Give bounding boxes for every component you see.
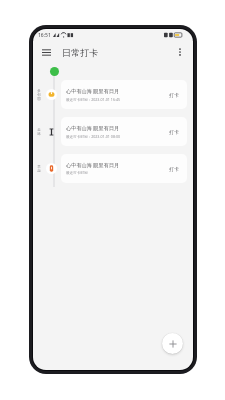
staticText: 16:51 xyxy=(38,32,51,39)
button[interactable]: 打卡 xyxy=(166,164,182,174)
button[interactable]: Open navigation menu xyxy=(39,45,53,59)
staticText: 打卡 xyxy=(169,166,179,172)
staticText: 国 xyxy=(37,97,41,101)
button[interactable]: 打卡 xyxy=(166,90,182,100)
staticText: 打卡 xyxy=(169,129,179,135)
button[interactable]: Add new check-in xyxy=(162,333,183,354)
staticText: 多 xyxy=(37,89,41,93)
staticText: 起 xyxy=(37,169,41,173)
staticText: 心中有山海 眼里有日月 xyxy=(66,124,120,131)
staticText: 心中有山海 眼里有日月 xyxy=(66,87,120,94)
button[interactable]: 心中有山海 眼里有日月 xyxy=(61,117,187,146)
button[interactable]: 心中有山海 眼里有日月 xyxy=(61,154,187,183)
button[interactable]: More options xyxy=(173,45,187,59)
staticText: 日常打卡 xyxy=(62,47,98,58)
staticText: 最近打卡时间 xyxy=(66,171,88,176)
staticText: 打卡 xyxy=(169,92,179,98)
staticText: 邻 xyxy=(37,93,41,97)
button[interactable]: 心中有山海 眼里有日月 xyxy=(61,80,187,109)
staticText: 最近打卡时间：2023-01-01 08:00 xyxy=(66,134,121,139)
staticText: 早 xyxy=(37,165,41,169)
staticText: 心中有山海 眼里有日月 xyxy=(66,161,120,168)
staticText: 走 xyxy=(37,128,41,132)
staticText: 路 xyxy=(37,132,41,136)
staticText: 最近打卡时间：2023-01-01 16:45 xyxy=(66,97,121,102)
button[interactable]: 打卡 xyxy=(166,127,182,137)
